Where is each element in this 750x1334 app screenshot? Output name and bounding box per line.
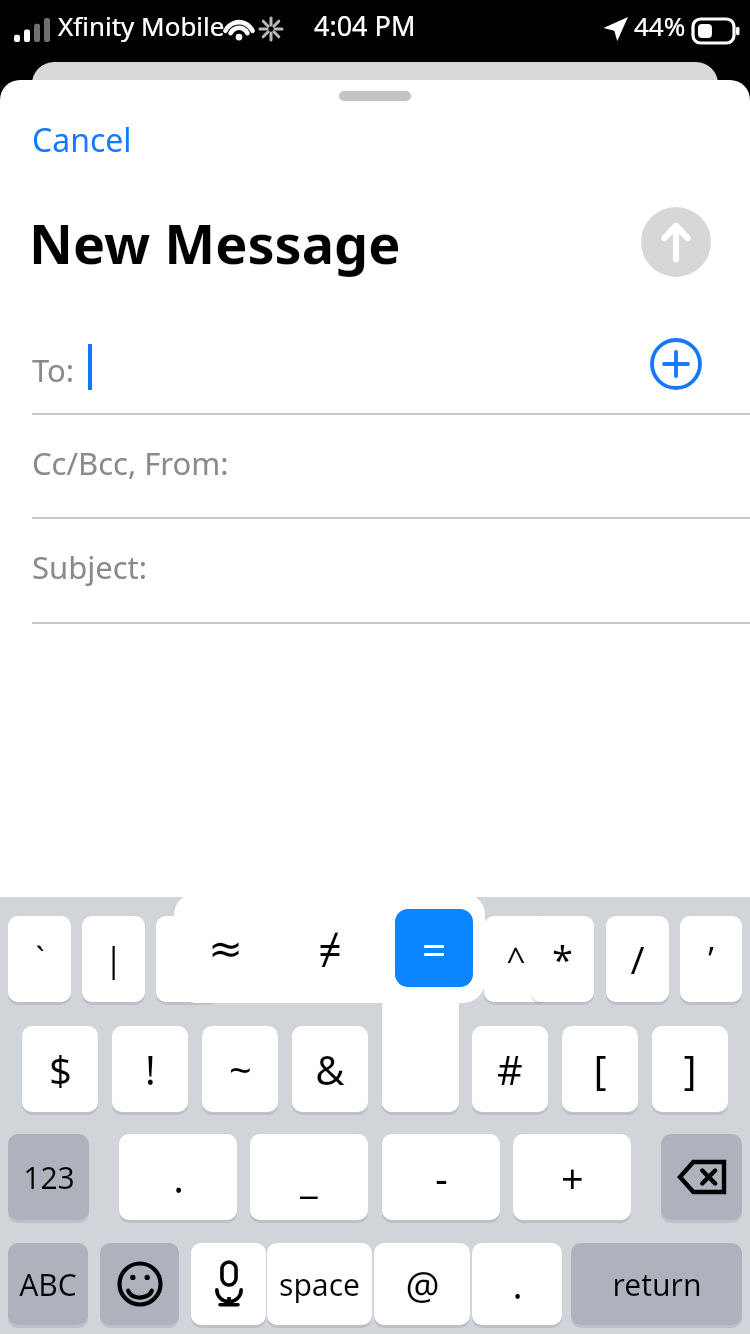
staticText: To: bbox=[32, 349, 75, 391]
button[interactable]: + bbox=[513, 1134, 631, 1220]
staticText: Cc/Bcc, From: bbox=[32, 442, 229, 484]
staticText: @ bbox=[405, 1258, 440, 1310]
button[interactable]: | bbox=[82, 916, 145, 1002]
staticText: = bbox=[422, 920, 447, 977]
button[interactable]: Send bbox=[641, 207, 711, 277]
button[interactable]: ~ bbox=[202, 1026, 278, 1112]
staticText: Xfinity Mobile bbox=[58, 8, 225, 43]
button[interactable]: . bbox=[472, 1243, 562, 1325]
staticText: return bbox=[612, 1264, 702, 1305]
button[interactable]: return bbox=[571, 1243, 742, 1325]
button[interactable]: - bbox=[382, 1134, 500, 1220]
staticText: 4:04 PM bbox=[314, 7, 416, 44]
button[interactable]: Dictate bbox=[191, 1243, 266, 1325]
button[interactable]: ’ bbox=[680, 916, 742, 1002]
staticText: # bbox=[497, 1042, 523, 1096]
button[interactable] bbox=[382, 1026, 459, 1112]
button[interactable]: = bbox=[395, 909, 473, 987]
staticText: ≈ bbox=[208, 924, 244, 973]
staticText: ` bbox=[35, 936, 45, 982]
staticText: Cancel bbox=[32, 118, 132, 162]
staticText: . bbox=[173, 1150, 184, 1204]
button[interactable]: To: bbox=[0, 327, 750, 413]
button[interactable]: ] bbox=[652, 1026, 728, 1112]
button[interactable]: ABC bbox=[8, 1243, 88, 1325]
staticText: / bbox=[630, 933, 645, 985]
staticText: New Message bbox=[29, 206, 401, 280]
staticText: * bbox=[552, 933, 573, 985]
staticText: ^ bbox=[506, 936, 526, 982]
button[interactable]: ^ bbox=[484, 916, 547, 1002]
staticText: ] bbox=[683, 1042, 697, 1096]
staticText: $ bbox=[49, 1042, 72, 1096]
button[interactable]: / bbox=[606, 916, 669, 1002]
staticText: | bbox=[104, 936, 123, 982]
staticText: space bbox=[279, 1264, 360, 1305]
button[interactable]: Backspace bbox=[661, 1134, 742, 1220]
button[interactable]: _ bbox=[250, 1134, 368, 1220]
button[interactable]: ` bbox=[8, 916, 71, 1002]
button[interactable]: Subject: bbox=[0, 518, 750, 622]
button[interactable]: # bbox=[472, 1026, 548, 1112]
staticText: ! bbox=[145, 1042, 156, 1096]
staticText: ≠ bbox=[318, 920, 343, 977]
staticText: & bbox=[315, 1042, 345, 1096]
button[interactable]: & bbox=[292, 1026, 368, 1112]
button[interactable]: $ bbox=[22, 1026, 98, 1112]
button[interactable]: Cc/Bcc, From: bbox=[0, 414, 750, 517]
button[interactable]: . bbox=[119, 1134, 237, 1220]
button[interactable]: Add contact bbox=[648, 336, 704, 392]
button[interactable]: ≠ bbox=[278, 893, 382, 1003]
staticText: . bbox=[512, 1258, 523, 1310]
button[interactable]: space bbox=[267, 1243, 372, 1325]
staticText: 44% bbox=[634, 8, 686, 43]
button[interactable] bbox=[156, 916, 219, 1002]
staticText: [ bbox=[593, 1042, 607, 1096]
staticText: + bbox=[561, 1150, 584, 1204]
button[interactable]: [ bbox=[562, 1026, 638, 1112]
button[interactable]: ≈ bbox=[174, 893, 278, 1003]
button[interactable]: Cancel bbox=[28, 112, 136, 168]
staticText: Subject: bbox=[32, 546, 148, 588]
staticText: - bbox=[435, 1150, 448, 1204]
staticText: 123 bbox=[23, 1157, 75, 1198]
button[interactable]: ! bbox=[112, 1026, 188, 1112]
button[interactable]: 123 bbox=[8, 1134, 89, 1220]
button[interactable]: Emoji bbox=[100, 1243, 179, 1325]
button[interactable]: @ bbox=[374, 1243, 470, 1325]
staticText: _ bbox=[300, 1150, 318, 1204]
button[interactable]: * bbox=[531, 916, 594, 1002]
staticText: ABC bbox=[19, 1264, 77, 1305]
staticText: ~ bbox=[229, 1042, 252, 1096]
staticText: ’ bbox=[708, 936, 714, 982]
